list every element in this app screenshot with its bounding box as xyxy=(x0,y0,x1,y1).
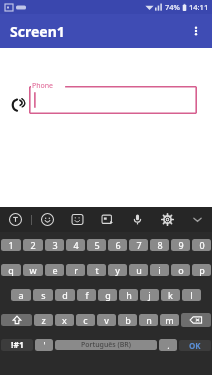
button[interactable]: d xyxy=(55,289,75,301)
staticText: p xyxy=(199,264,205,276)
button[interactable]: s xyxy=(33,289,53,301)
button[interactable]: 9 xyxy=(171,239,190,251)
staticText: ' xyxy=(43,339,46,351)
button[interactable]: m xyxy=(160,314,179,326)
staticText: r xyxy=(74,264,78,276)
staticText: z xyxy=(41,314,46,326)
button[interactable]: w xyxy=(23,264,43,276)
button[interactable]: 3 xyxy=(45,239,64,251)
button[interactable]: OK xyxy=(179,340,211,351)
staticText: e xyxy=(52,264,58,276)
staticText: o xyxy=(178,264,184,276)
button[interactable]: Voice input xyxy=(122,207,152,232)
button[interactable]: Shift xyxy=(1,314,32,326)
button[interactable]: b xyxy=(118,314,137,326)
button[interactable]: e xyxy=(45,264,64,276)
staticText: t xyxy=(95,264,99,276)
staticText: y xyxy=(115,264,120,276)
staticText: k xyxy=(168,289,173,301)
staticText: f xyxy=(85,289,89,301)
button[interactable]: q xyxy=(1,264,21,276)
staticText: i xyxy=(158,264,161,276)
staticText: 5 xyxy=(94,239,100,251)
staticText: g xyxy=(105,289,111,301)
button[interactable]: c xyxy=(76,314,95,326)
staticText: x xyxy=(62,314,67,326)
button[interactable]: More options xyxy=(182,17,210,45)
button[interactable]: j xyxy=(140,289,159,301)
button[interactable]: 4 xyxy=(66,239,85,251)
button[interactable]: t xyxy=(87,264,106,276)
button[interactable]: . xyxy=(159,339,177,351)
staticText: 3 xyxy=(52,239,58,251)
button[interactable]: ' xyxy=(35,339,53,351)
staticText: 2 xyxy=(30,239,36,251)
button[interactable]: l xyxy=(182,289,201,301)
staticText: u xyxy=(136,264,142,276)
button[interactable]: p xyxy=(192,264,211,276)
button[interactable]: a xyxy=(11,289,31,301)
staticText: q xyxy=(8,264,14,276)
button[interactable]: 7 xyxy=(129,239,148,251)
button[interactable]: 8 xyxy=(150,239,169,251)
button[interactable]: Backspace xyxy=(181,313,211,327)
staticText: v xyxy=(104,314,109,326)
staticText: n xyxy=(146,314,152,326)
staticText: 14:11 xyxy=(189,2,209,12)
staticText: b xyxy=(125,314,131,326)
staticText: a xyxy=(18,289,24,301)
button[interactable]: 2 xyxy=(23,239,43,251)
staticText: Phone xyxy=(32,81,54,91)
staticText: m xyxy=(165,314,174,326)
staticText: 9 xyxy=(178,239,184,251)
button[interactable]: v xyxy=(97,314,116,326)
button[interactable]: h xyxy=(119,289,138,301)
staticText: h xyxy=(126,289,132,301)
staticText: l xyxy=(190,289,193,301)
button[interactable]: 0 xyxy=(192,239,211,251)
staticText: w xyxy=(29,264,37,276)
staticText: c xyxy=(83,314,88,326)
button[interactable]: y xyxy=(108,264,127,276)
button[interactable]: Emoji xyxy=(32,207,62,232)
button[interactable]: Keyboard modes xyxy=(0,207,31,232)
button[interactable]: Stickers xyxy=(62,207,92,232)
button[interactable]: i xyxy=(150,264,169,276)
button[interactable]: GIF xyxy=(92,207,122,232)
staticText: 7 xyxy=(136,239,142,251)
button[interactable]: Collapse xyxy=(182,207,212,232)
staticText: 4 xyxy=(73,239,79,251)
button[interactable]: g xyxy=(98,289,117,301)
button[interactable]: z xyxy=(34,314,53,326)
staticText: OK xyxy=(189,340,201,351)
staticText: !#1 xyxy=(11,339,24,351)
button[interactable]: 6 xyxy=(108,239,127,251)
staticText: 0 xyxy=(199,239,205,251)
staticText: 1 xyxy=(8,239,14,251)
button[interactable]: 5 xyxy=(87,239,106,251)
button[interactable]: k xyxy=(161,289,180,301)
button[interactable]: Português (BR) xyxy=(55,340,157,350)
staticText: 6 xyxy=(115,239,121,251)
button[interactable]: 1 xyxy=(1,239,21,251)
staticText: . xyxy=(167,339,170,351)
button[interactable]: n xyxy=(139,314,158,326)
staticText: 74% xyxy=(165,2,180,12)
button[interactable]: Phone xyxy=(8,95,28,115)
button[interactable]: !#1 xyxy=(1,339,33,351)
button[interactable]: o xyxy=(171,264,190,276)
button[interactable]: Settings xyxy=(152,207,182,232)
button[interactable] xyxy=(29,86,197,114)
staticText: 8 xyxy=(157,239,163,251)
staticText: Português (BR) xyxy=(81,340,131,350)
staticText: s xyxy=(41,289,46,301)
button[interactable]: u xyxy=(129,264,148,276)
staticText: Screen1 xyxy=(10,22,65,41)
button[interactable]: f xyxy=(77,289,96,301)
staticText: d xyxy=(62,289,68,301)
button[interactable]: x xyxy=(55,314,74,326)
staticText: j xyxy=(148,289,151,301)
button[interactable]: r xyxy=(66,264,85,276)
